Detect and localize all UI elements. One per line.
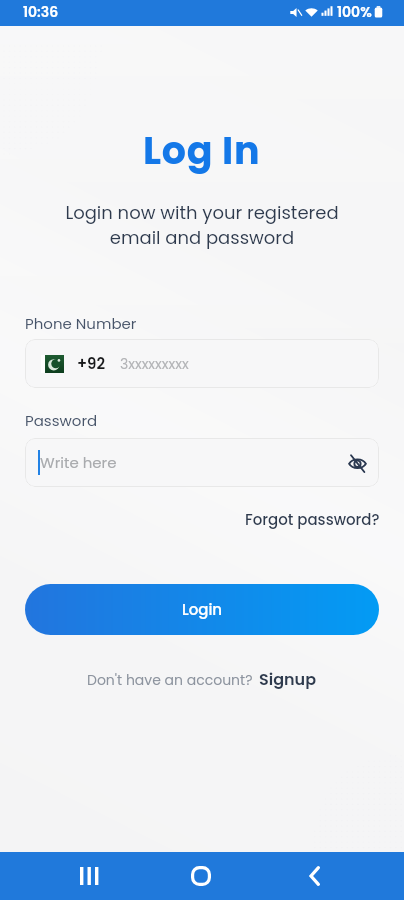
button[interactable]: +92 xyxy=(25,339,379,388)
button[interactable]: Signup xyxy=(259,668,317,690)
staticText: 100% xyxy=(337,2,372,22)
staticText: Write here xyxy=(40,452,117,473)
button[interactable]: Show password xyxy=(344,450,370,476)
button[interactable]: Back xyxy=(286,854,342,898)
staticText: Login xyxy=(182,599,223,620)
button[interactable]: Forgot password? xyxy=(245,509,380,530)
button[interactable]: Write here xyxy=(25,438,379,487)
button[interactable]: Recent apps xyxy=(61,854,117,898)
staticText: Password xyxy=(25,410,98,431)
button[interactable]: Home xyxy=(173,854,229,898)
staticText: Don't have an account? xyxy=(87,670,253,690)
staticText: +92 xyxy=(77,353,106,374)
staticText: Log In xyxy=(143,124,261,177)
staticText: Login now with your registered email and… xyxy=(65,200,339,251)
staticText: 3xxxxxxxxx xyxy=(120,354,189,374)
staticText: Phone Number xyxy=(25,313,137,334)
button[interactable]: Login xyxy=(25,584,379,635)
staticText: 10:36 xyxy=(23,2,59,22)
